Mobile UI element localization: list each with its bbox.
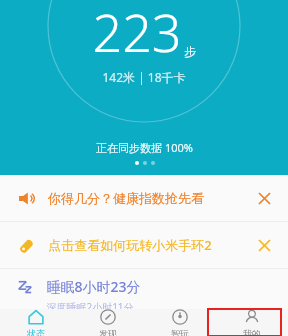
staticText: 点击查看如何玩转小米手环2 — [48, 236, 212, 254]
staticText: 正在同步数据 100% — [96, 140, 193, 155]
button[interactable]: 关闭 — [250, 184, 278, 212]
button[interactable]: 你得几分？健康指数抢先看 — [0, 175, 288, 221]
staticText: 142米 | 18千卡 — [102, 69, 186, 85]
button[interactable]: 关闭 — [250, 231, 278, 259]
button[interactable]: 智玩 — [144, 309, 216, 336]
staticText: 你得几分？健康指数抢先看 — [48, 190, 204, 206]
staticText: 步 — [184, 44, 196, 59]
staticText: 状态 — [27, 328, 45, 336]
button[interactable]: 睡眠8小时23分 — [0, 269, 288, 309]
staticText: 我的 — [243, 328, 261, 336]
staticText: 睡眠8小时23分 — [46, 277, 141, 296]
button[interactable]: 点击查看如何玩转小米手环2 — [0, 222, 288, 268]
staticText: 智玩 — [171, 328, 189, 336]
staticText: 发现 — [99, 328, 117, 336]
staticText: 223 — [92, 0, 182, 67]
button[interactable]: 我的 — [216, 309, 288, 336]
button[interactable]: 发现 — [72, 309, 144, 336]
staticText: 深度睡眠2小时11分 — [46, 300, 134, 309]
button[interactable]: 状态 — [0, 309, 72, 336]
